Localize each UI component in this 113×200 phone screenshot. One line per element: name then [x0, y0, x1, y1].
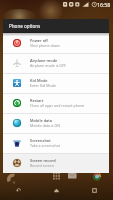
button[interactable]: Mobile data	[3, 113, 109, 133]
button[interactable]: Back	[0, 180, 37, 200]
staticText: 16:58	[97, 1, 111, 8]
button[interactable]: Power off	[3, 33, 109, 53]
button[interactable]: Restart	[3, 93, 109, 113]
button[interactable]: Home	[37, 180, 75, 200]
button[interactable]: Recent apps	[75, 180, 113, 200]
staticText: Power off	[30, 38, 48, 43]
staticText: Screen record	[30, 158, 56, 163]
staticText: Kid Mode	[30, 78, 48, 83]
button[interactable]: Screenshot	[3, 133, 109, 153]
staticText: Record screen	[30, 163, 54, 168]
button[interactable]: Airplane mode	[3, 53, 109, 73]
staticText: Mobile data	[30, 118, 53, 123]
staticText: Shut phone down	[30, 43, 60, 48]
staticText: Screenshot	[30, 138, 51, 143]
button[interactable]: Screen record	[3, 153, 109, 173]
staticText: Airplane mode is OFF	[30, 63, 66, 68]
staticText: Mobile data is ON	[30, 123, 61, 128]
button[interactable]: Kid Mode	[3, 73, 109, 93]
staticText: Airplane mode	[30, 58, 58, 63]
staticText: Phone options	[9, 23, 41, 29]
staticText: Close all apps and restart phone	[30, 103, 85, 108]
staticText: Restart	[30, 98, 44, 103]
staticText: Take a screenshot	[30, 143, 61, 148]
staticText: Enter Kid Mode	[30, 83, 56, 88]
